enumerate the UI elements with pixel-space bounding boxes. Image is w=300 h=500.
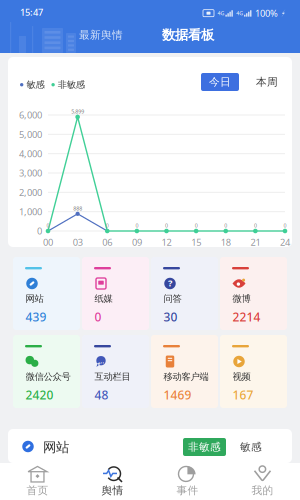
staticText: 数据看板 <box>162 27 214 43</box>
staticText: 我的 <box>251 484 273 497</box>
staticText: 0 <box>46 222 49 229</box>
staticText: 100% <box>255 7 278 19</box>
staticText: 首页 <box>26 484 48 497</box>
staticText: 非敏感 <box>188 440 221 453</box>
staticText: 2,000 <box>19 186 42 198</box>
staticText: 非敏感 <box>55 79 85 90</box>
staticText: 12 <box>161 236 171 248</box>
button[interactable]: 事件 <box>150 462 225 500</box>
staticText: 48 <box>94 387 108 403</box>
staticText: 0 <box>106 222 109 229</box>
staticText: 移动客户端 <box>163 371 208 382</box>
staticText: 网站 <box>43 439 69 455</box>
staticText: 15 <box>191 236 201 248</box>
staticText: 4G <box>236 10 243 17</box>
staticText: 网站 <box>25 293 43 304</box>
staticText: 微信公众号 <box>25 371 70 382</box>
staticText: 03 <box>73 236 83 248</box>
staticText: 1,000 <box>19 205 42 218</box>
staticText: 视频 <box>232 371 250 382</box>
staticText: 4,000 <box>19 147 42 160</box>
button[interactable]: 今日 <box>201 73 239 91</box>
staticText: 5,000 <box>19 128 42 140</box>
staticText: 3,000 <box>19 167 42 179</box>
button[interactable]: 我的 <box>225 462 300 500</box>
staticText: 本周 <box>256 75 278 88</box>
staticText: 0 <box>37 225 42 237</box>
staticText: 21 <box>250 236 260 248</box>
staticText: 888 <box>73 205 82 212</box>
staticText: 2214 <box>232 309 260 325</box>
button[interactable]: ? <box>151 257 218 330</box>
staticText: 30 <box>163 309 177 325</box>
staticText: 06 <box>102 236 112 248</box>
button[interactable]: 敏感 <box>234 438 268 456</box>
staticText: … <box>98 355 104 366</box>
button[interactable]: 本周 <box>248 73 286 91</box>
staticText: 互动栏目 <box>94 371 130 382</box>
button[interactable]: 舆情 <box>75 462 150 500</box>
staticText: 2420 <box>25 387 53 403</box>
button[interactable]: 微博 <box>220 257 287 330</box>
staticText: 439 <box>25 309 46 325</box>
button[interactable]: 网站 <box>13 257 80 330</box>
button[interactable]: 非敏感 <box>183 438 226 456</box>
staticText: 00 <box>43 236 53 248</box>
button[interactable]: … <box>82 335 149 408</box>
staticText: 0 <box>254 222 257 229</box>
staticText: 纸媒 <box>94 293 112 304</box>
staticText: 0 <box>165 222 168 229</box>
staticText: 问答 <box>163 293 181 304</box>
staticText: 18 <box>221 236 231 248</box>
staticText: 0 <box>195 222 198 229</box>
button[interactable]: 数据看板 <box>152 22 224 48</box>
button[interactable]: 移动客户端 <box>151 335 218 408</box>
staticText: 6,000 <box>19 109 42 121</box>
staticText: 事件 <box>176 484 198 497</box>
staticText: 0 <box>283 222 286 229</box>
staticText: ? <box>168 277 172 289</box>
staticText: 0 <box>94 309 101 325</box>
button[interactable]: 视频 <box>220 335 287 408</box>
staticText: 0 <box>135 222 138 229</box>
staticText: 舆情 <box>101 484 123 497</box>
staticText: 微博 <box>232 293 250 304</box>
button[interactable]: 纸媒 <box>82 257 149 330</box>
staticText: 24 <box>280 236 290 248</box>
staticText: 敏感 <box>240 440 262 453</box>
staticText: 4G <box>217 10 224 17</box>
staticText: 15:47 <box>20 6 43 18</box>
button[interactable]: 最新舆情 <box>70 22 132 48</box>
staticText: 5,899 <box>71 108 84 115</box>
staticText: 167 <box>232 387 253 403</box>
staticText: 最新舆情 <box>79 28 123 41</box>
staticText: 敏感 <box>23 79 44 90</box>
staticText: 0 <box>224 222 227 229</box>
staticText: 今日 <box>209 75 231 88</box>
staticText: 09 <box>132 236 142 248</box>
button[interactable]: 首页 <box>0 462 75 500</box>
button[interactable]: 微信公众号 <box>13 335 80 408</box>
staticText: 1469 <box>163 387 191 403</box>
